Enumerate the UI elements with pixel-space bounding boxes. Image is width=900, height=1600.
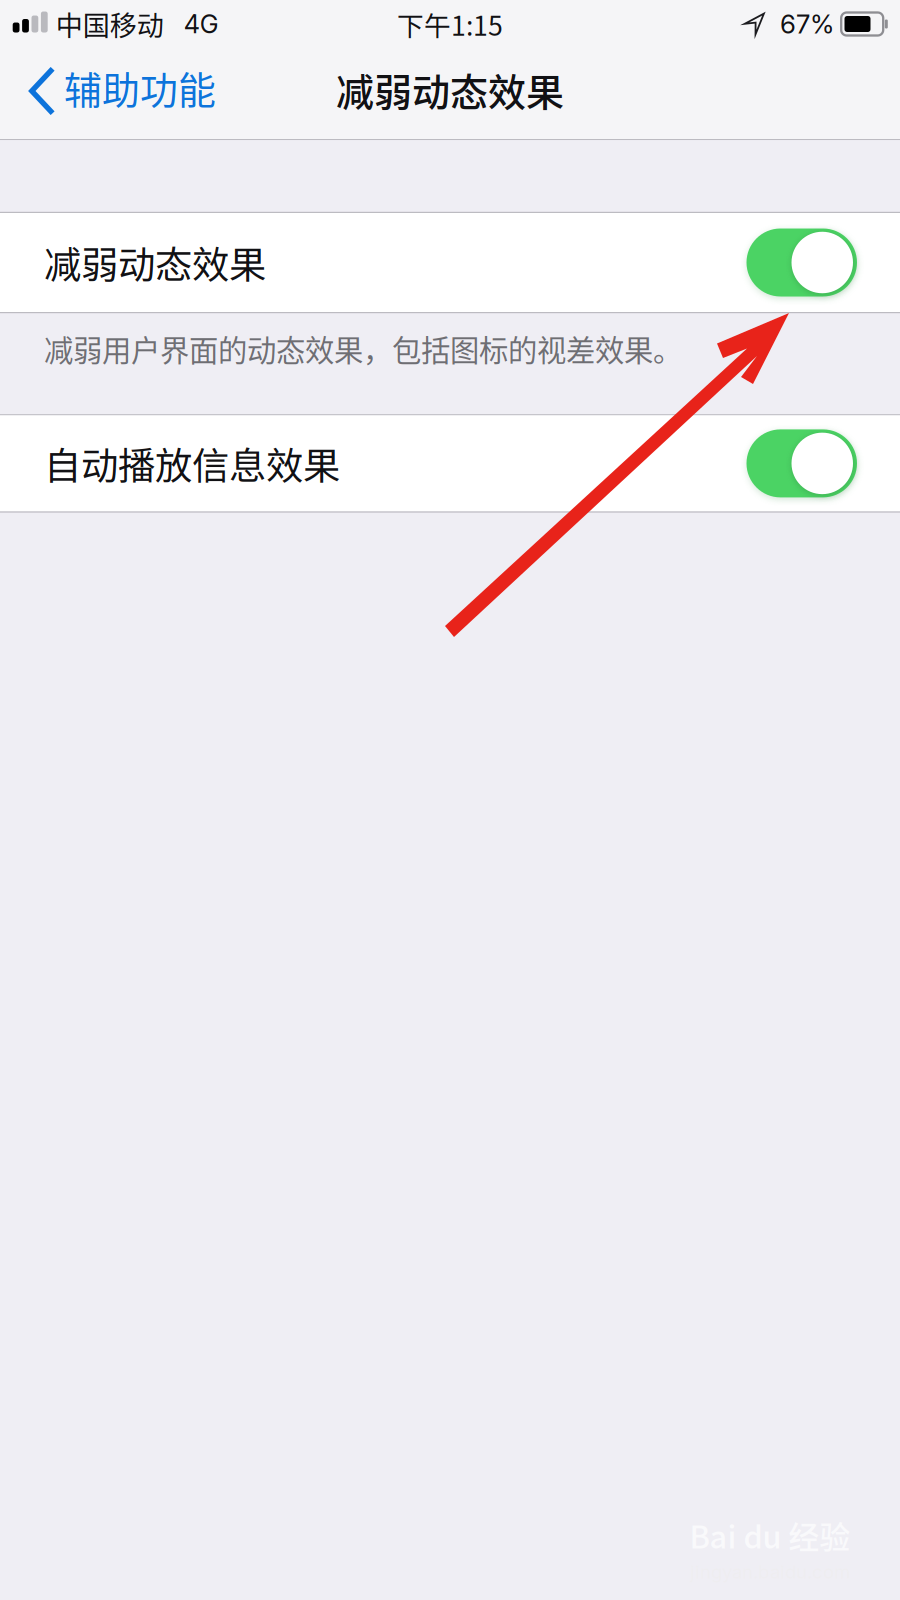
staticText: 4G <box>184 9 219 39</box>
button[interactable]: 减弱动态效果 <box>0 213 900 312</box>
staticText: 自动播放信息效果 <box>44 436 340 490</box>
staticText: Bai du 经验 <box>689 1513 850 1557</box>
staticText: 下午1:15 <box>397 5 503 43</box>
staticText: 67% <box>780 8 834 40</box>
staticText: 减弱用户界面的动态效果，包括图标的视差效果。 <box>44 327 682 370</box>
staticText: 减弱动态效果 <box>336 62 564 117</box>
staticText: 减弱动态效果 <box>44 235 266 290</box>
staticText: 中国移动 <box>56 4 164 44</box>
button[interactable]: 辅助功能 <box>0 48 236 139</box>
staticText: 辅助功能 <box>64 60 216 115</box>
button[interactable]: 自动播放信息效果 <box>0 415 900 511</box>
